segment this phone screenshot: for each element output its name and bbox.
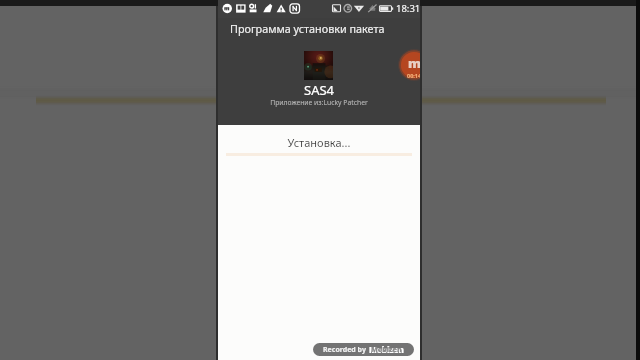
button[interactable]: Установка... xyxy=(218,125,420,158)
staticText: Mobizen xyxy=(369,344,404,355)
staticText: SAS4 xyxy=(218,81,420,99)
staticText: m xyxy=(408,54,420,72)
staticText: Приложение из:Lucky Patcher xyxy=(218,98,420,107)
button[interactable]: Mobizen screen recorder xyxy=(398,49,420,81)
staticText: 00:14 xyxy=(407,72,420,79)
staticText: Recorded by xyxy=(323,345,366,355)
staticText: Установка... xyxy=(218,135,420,150)
button[interactable]: SAS4 application icon xyxy=(304,51,333,80)
button[interactable]: Recorded by xyxy=(313,343,414,356)
staticText: 18:31 xyxy=(396,2,421,15)
staticText: Mobizen xyxy=(371,345,402,355)
staticText: Программа установки пакета xyxy=(230,21,385,36)
